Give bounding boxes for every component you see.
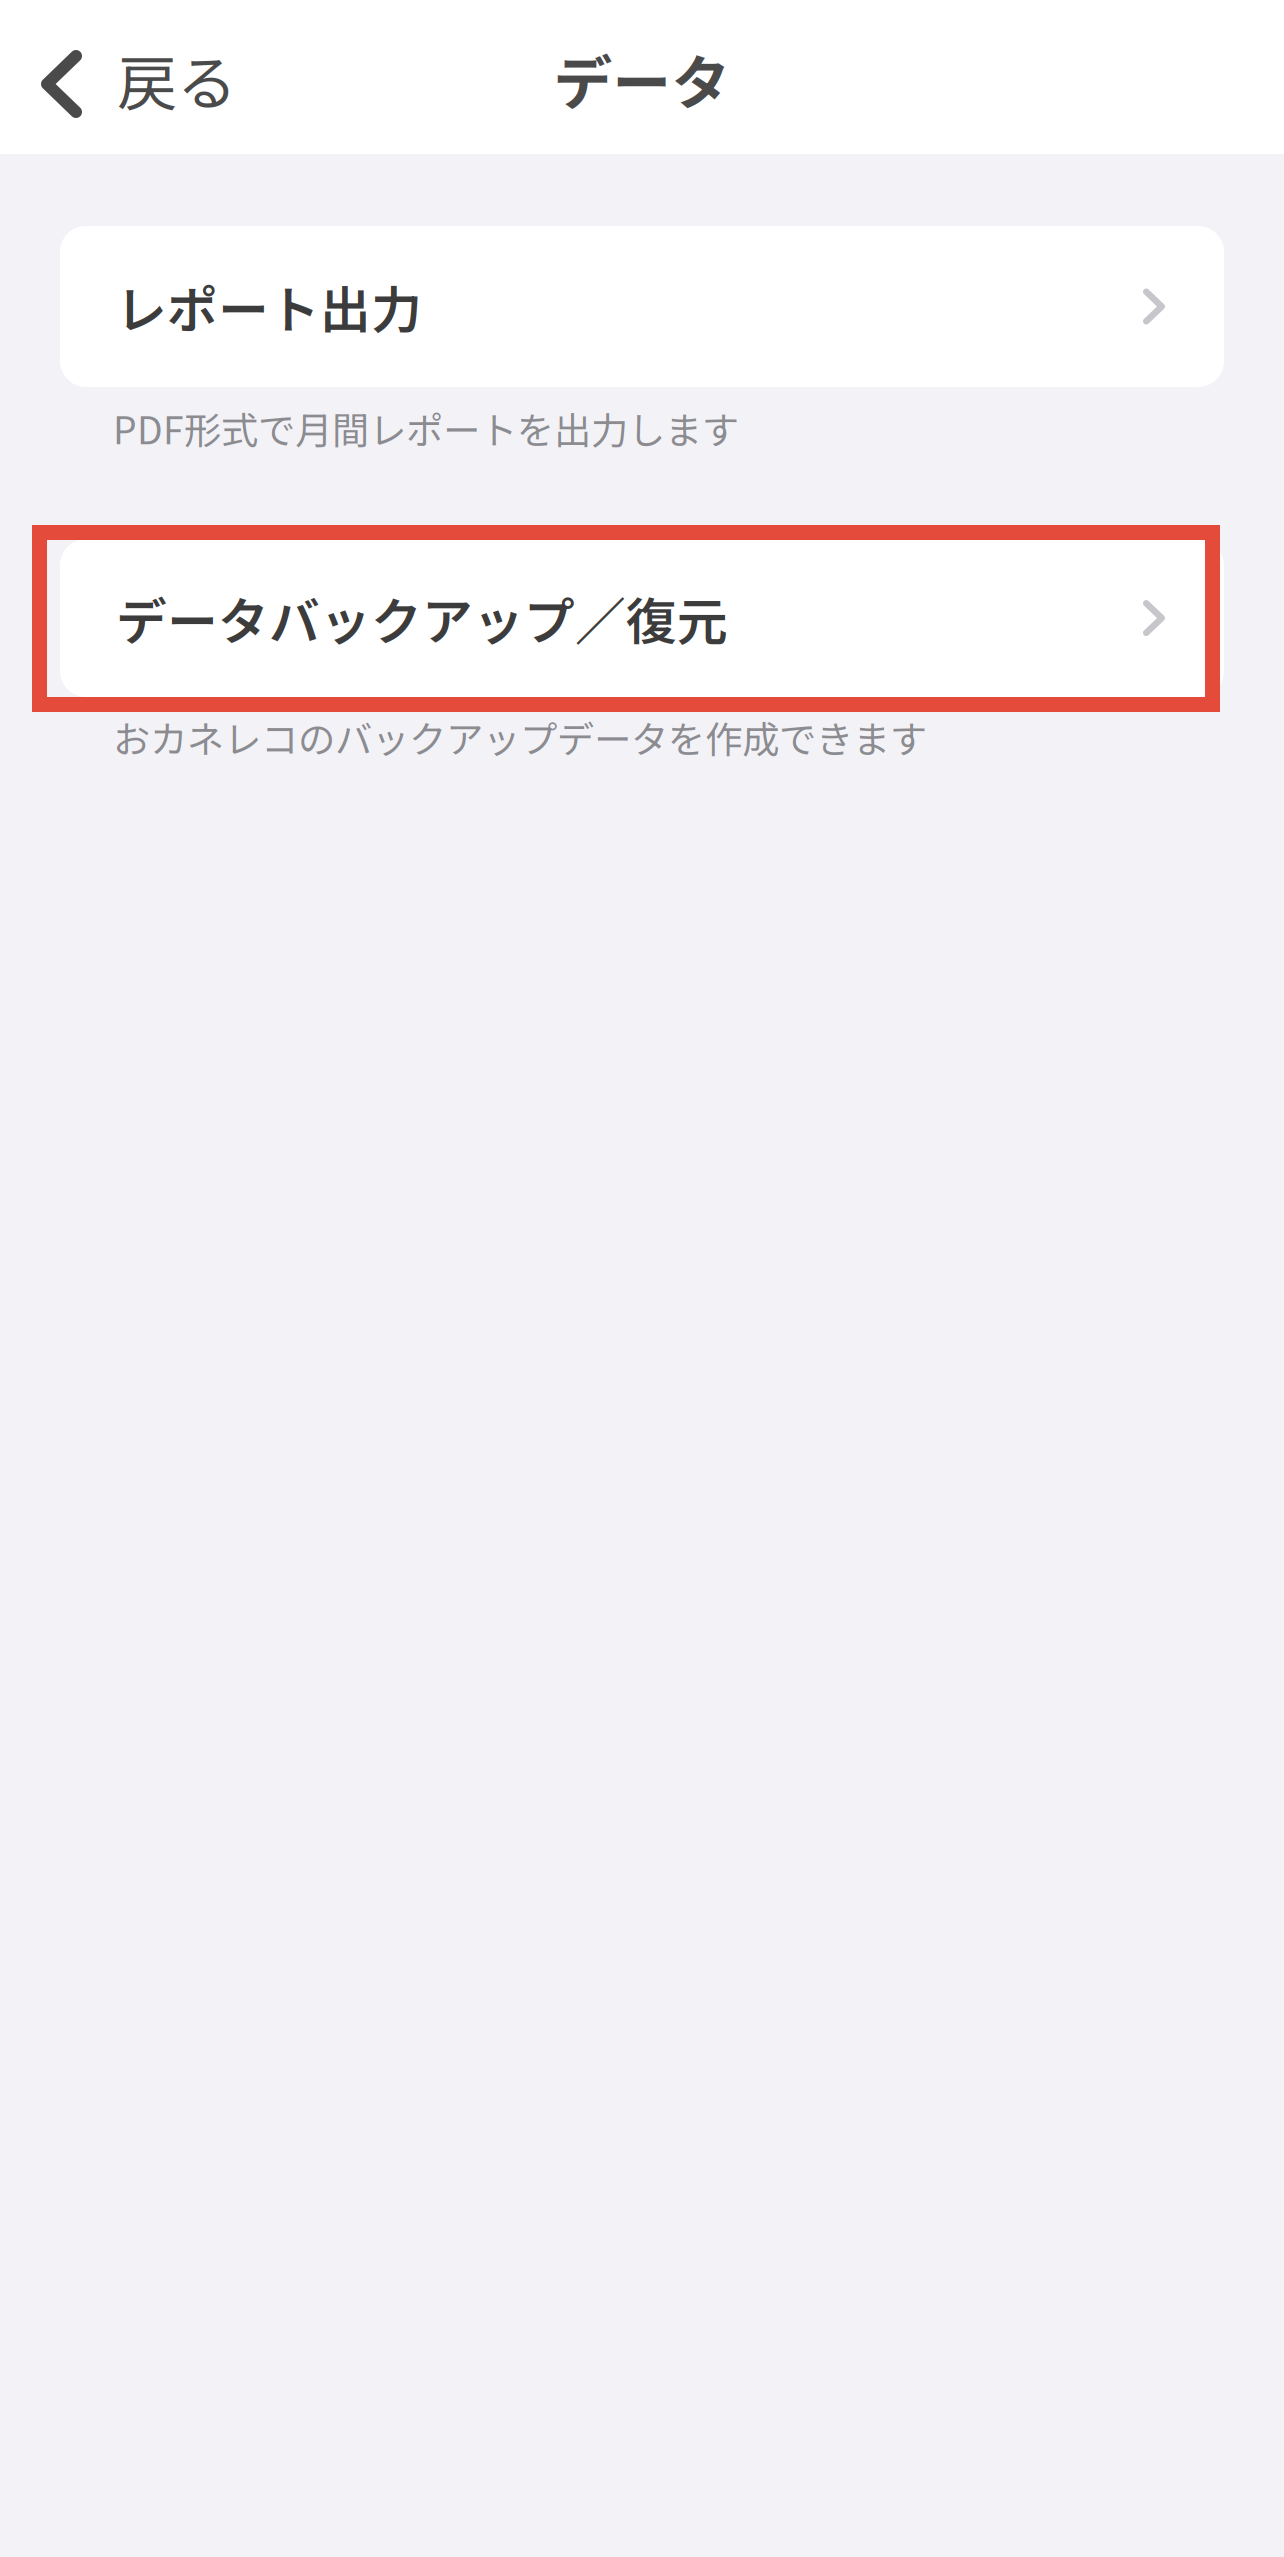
staticText: PDF形式で月間レポートを出力します: [113, 401, 739, 455]
staticText: レポート出力: [116, 270, 422, 343]
staticText: 戻る: [117, 36, 237, 122]
staticText: データバックアップ／復元: [116, 581, 728, 655]
button[interactable]: 戻る: [0, 0, 261, 154]
button[interactable]: データバックアップ／復元: [60, 539, 1224, 697]
button[interactable]: レポート出力: [60, 226, 1224, 387]
staticText: データ: [553, 36, 730, 121]
staticText: おカネレコのバックアップデータを作成できます: [113, 710, 927, 764]
